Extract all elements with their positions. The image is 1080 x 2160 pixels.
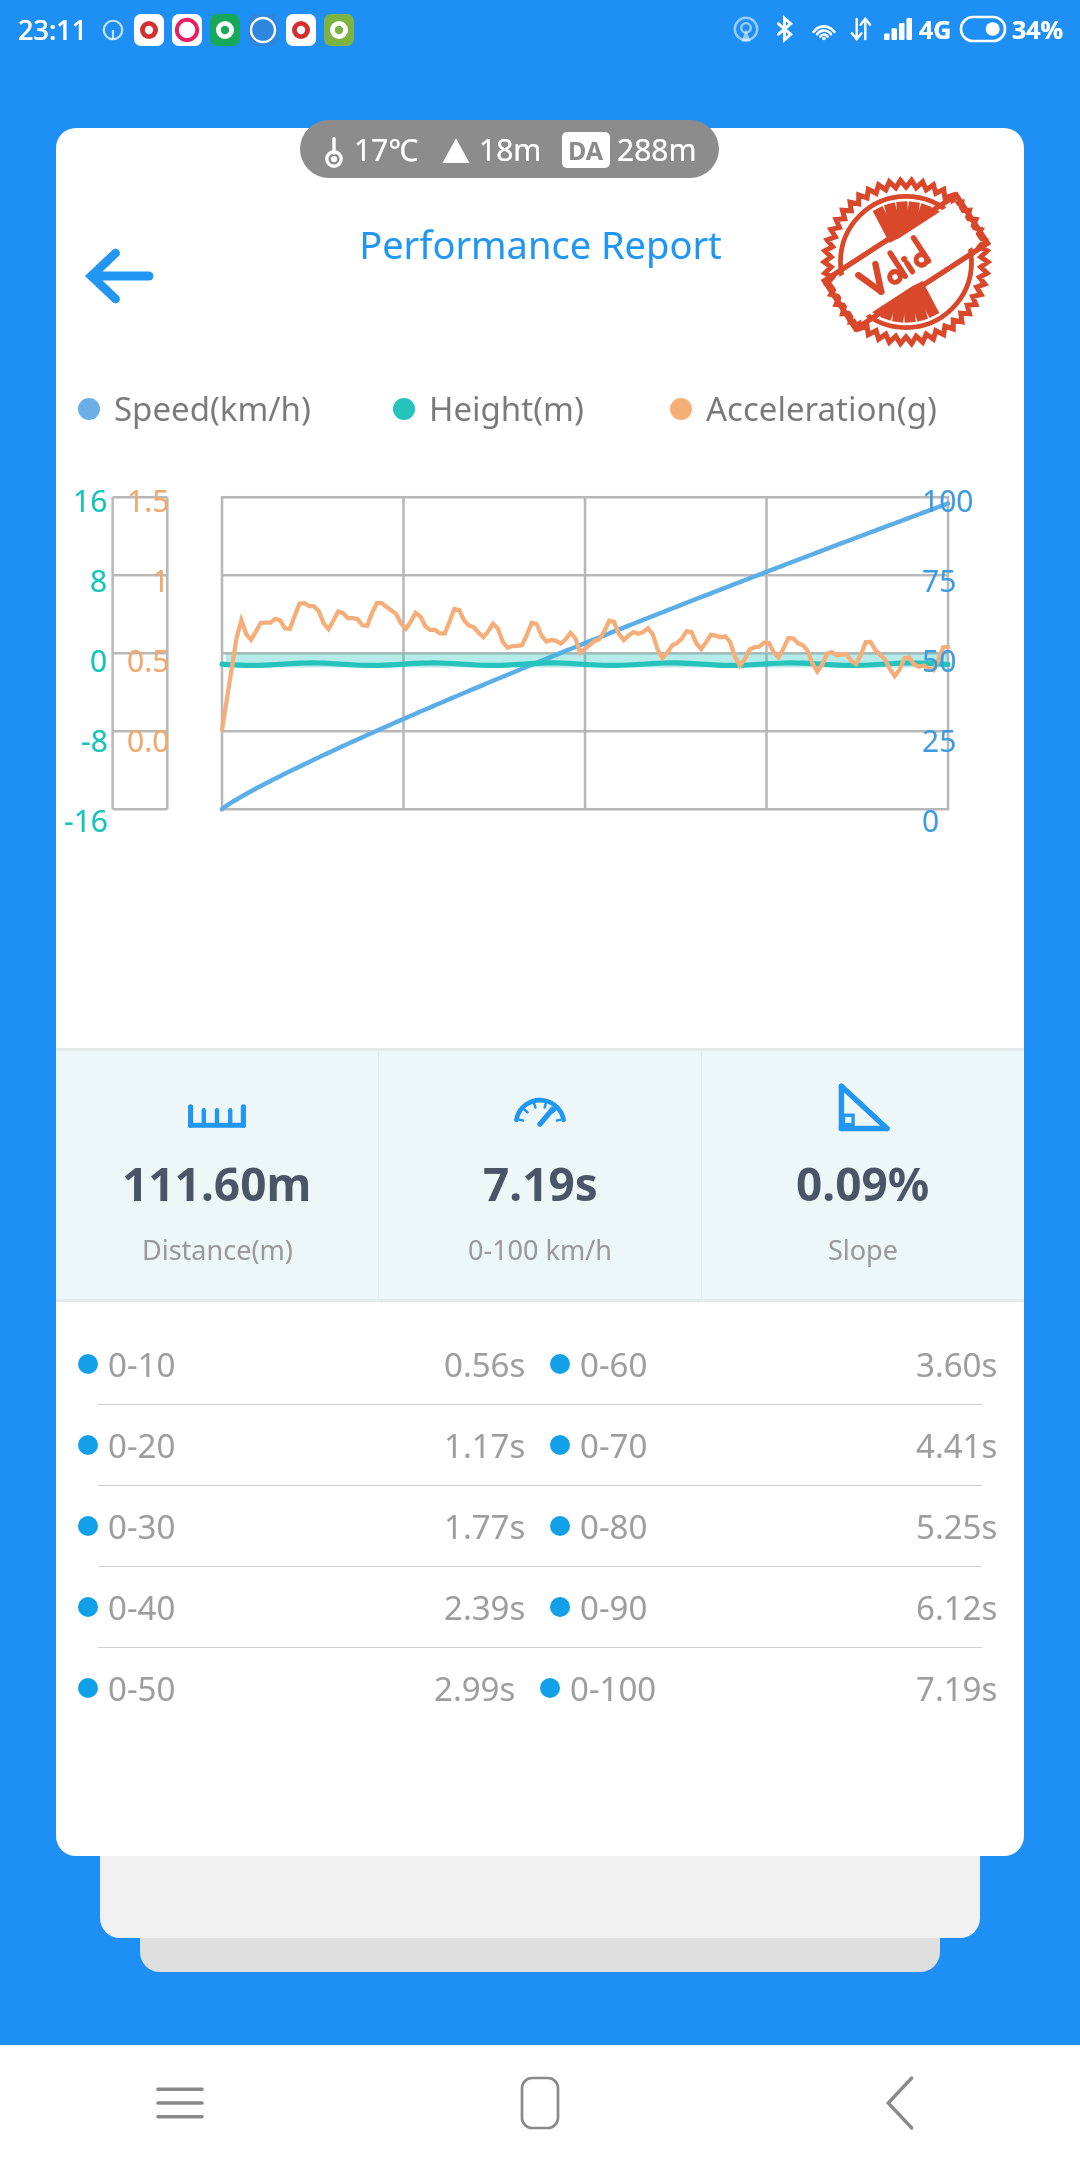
staticText: -16 — [64, 800, 108, 841]
staticText: 0-40 — [108, 1585, 176, 1630]
staticText: 0-20 — [108, 1423, 176, 1468]
staticText: 1.17s — [444, 1423, 526, 1468]
staticText: 17℃ — [354, 129, 419, 170]
staticText: 0 — [90, 640, 108, 681]
staticText: Speed(km/h) — [114, 386, 311, 431]
staticText: 7.19s — [483, 1152, 598, 1215]
staticText: Performance Report — [359, 218, 722, 270]
button[interactable]: Recent apps — [0, 2045, 360, 2160]
staticText: 0-100 — [570, 1666, 657, 1711]
staticText: Height(m) — [429, 386, 584, 431]
staticText: 0.5 — [127, 640, 170, 681]
staticText: 0-60 — [580, 1342, 648, 1387]
staticText: 0 — [922, 800, 940, 841]
staticText: 8 — [90, 560, 108, 601]
staticText: 0-100 km/h — [468, 1231, 612, 1268]
staticText: 0-80 — [580, 1504, 648, 1549]
staticText: 75 — [922, 560, 957, 601]
button[interactable]: 0-40 — [56, 1567, 1024, 1647]
staticText: 2.99s — [434, 1666, 516, 1711]
staticText: 1 — [152, 560, 170, 601]
staticText: 0-70 — [580, 1423, 648, 1468]
staticText: 111.60m — [122, 1152, 312, 1215]
staticText: -8 — [81, 720, 108, 761]
button[interactable]: Back — [70, 228, 166, 324]
staticText: 0.09% — [796, 1152, 930, 1215]
staticText: 34% — [1012, 12, 1064, 46]
button[interactable]: 17℃ — [300, 120, 719, 178]
button[interactable]: 0-10 — [56, 1324, 1024, 1404]
staticText: 100 — [922, 480, 974, 521]
staticText: DA — [568, 133, 604, 167]
button[interactable]: 0.09% — [702, 1048, 1024, 1302]
staticText: 1.5 — [127, 480, 170, 521]
staticText: 23:11 — [18, 11, 88, 48]
staticText: 18m — [479, 129, 542, 170]
staticText: 0-30 — [108, 1504, 176, 1549]
staticText: 1.77s — [444, 1504, 526, 1549]
staticText: 0.56s — [444, 1342, 526, 1387]
button[interactable]: 111.60m — [56, 1048, 378, 1302]
button[interactable]: 0-30 — [56, 1486, 1024, 1566]
staticText: 5.25s — [916, 1504, 998, 1549]
button[interactable]: Home — [360, 2045, 720, 2160]
staticText: 0-50 — [108, 1666, 176, 1711]
staticText: 25 — [922, 720, 957, 761]
staticText: 16 — [73, 480, 108, 521]
staticText: 4G — [919, 12, 952, 46]
staticText: Acceleration(g) — [706, 386, 937, 431]
staticText: Distance(m) — [142, 1231, 293, 1268]
staticText: 7.19s — [916, 1666, 998, 1711]
staticText: 0-10 — [108, 1342, 176, 1387]
staticText: 6.12s — [916, 1585, 998, 1630]
staticText: 4.41s — [916, 1423, 998, 1468]
staticText: 0.0 — [127, 720, 170, 761]
button[interactable]: 0-50 — [56, 1648, 1024, 1728]
staticText: 50 — [922, 640, 957, 681]
staticText: 0-90 — [580, 1585, 648, 1630]
button[interactable]: 0-20 — [56, 1405, 1024, 1485]
staticText: 288m — [617, 129, 697, 170]
button[interactable]: Back — [720, 2045, 1080, 2160]
staticText: 3.60s — [916, 1342, 998, 1387]
staticText: Slope — [828, 1231, 898, 1268]
staticText: 2.39s — [444, 1585, 526, 1630]
button[interactable]: 7.19s — [379, 1048, 701, 1302]
